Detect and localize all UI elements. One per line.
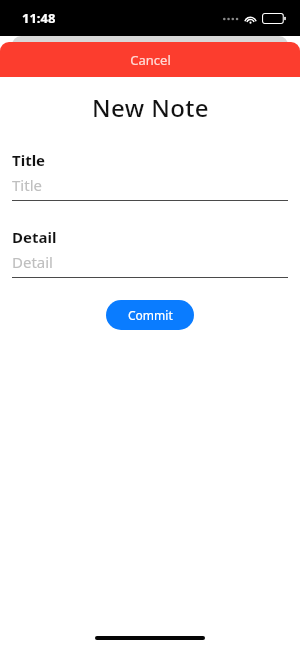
staticText: Commit (128, 307, 173, 323)
button[interactable]: Title (12, 150, 288, 201)
staticText: Cancel (130, 51, 171, 69)
staticText: Detail (12, 227, 57, 247)
staticText: New Note (92, 91, 209, 124)
staticText: 11:48 (22, 9, 56, 27)
staticText: Title (12, 150, 46, 170)
button[interactable]: Cancel (0, 42, 300, 77)
button[interactable]: Commit (106, 300, 194, 330)
staticText: Title (12, 175, 42, 195)
staticText: Detail (12, 252, 53, 272)
button[interactable]: Detail (12, 227, 288, 278)
